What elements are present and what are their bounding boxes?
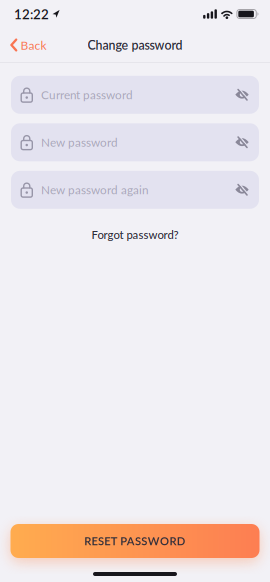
button[interactable]: Show password (235, 89, 259, 100)
staticText: Forgot password? (91, 228, 178, 241)
staticText: Change password (87, 38, 182, 52)
button[interactable]: Back (0, 38, 46, 52)
button[interactable]: Show password (235, 184, 259, 196)
staticText: RESET PASSWORD (84, 534, 186, 548)
button[interactable]: Forgot password? (91, 228, 178, 241)
staticText: New password (41, 135, 118, 149)
staticText: 12:22 (14, 6, 49, 22)
staticText: New password again (41, 183, 149, 197)
staticText: Current password (41, 88, 133, 102)
staticText: Back (20, 38, 46, 52)
button[interactable]: RESET PASSWORD (10, 524, 259, 558)
button[interactable]: Show password (235, 137, 259, 148)
